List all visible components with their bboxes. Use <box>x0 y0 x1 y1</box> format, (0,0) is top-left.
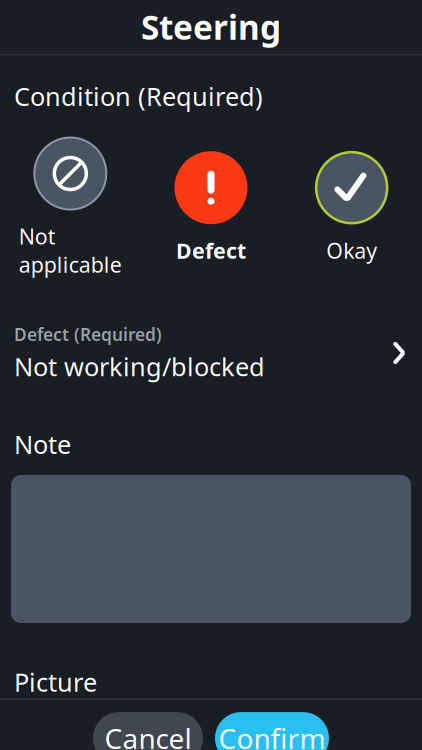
button[interactable]: Cancel <box>93 712 203 750</box>
staticText: Not applicable <box>19 222 122 279</box>
staticText: Steering <box>141 5 281 49</box>
button[interactable]: Defect <box>141 149 281 266</box>
staticText: Cancel <box>104 719 191 750</box>
button[interactable]: Confirm <box>215 712 329 750</box>
staticText: Confirm <box>218 719 325 750</box>
button[interactable]: Not applicable <box>0 135 141 281</box>
staticText: Defect <box>176 236 246 264</box>
staticText: Note <box>14 427 71 461</box>
staticText: Okay <box>326 236 377 264</box>
staticText: Picture <box>14 665 97 699</box>
staticText: Condition (Required) <box>14 79 263 113</box>
button[interactable]: Okay <box>281 149 422 266</box>
staticText: Defect (Required) <box>14 323 162 346</box>
button[interactable]: Defect (Required) <box>0 317 422 389</box>
staticText: Not working/blocked <box>14 350 265 383</box>
